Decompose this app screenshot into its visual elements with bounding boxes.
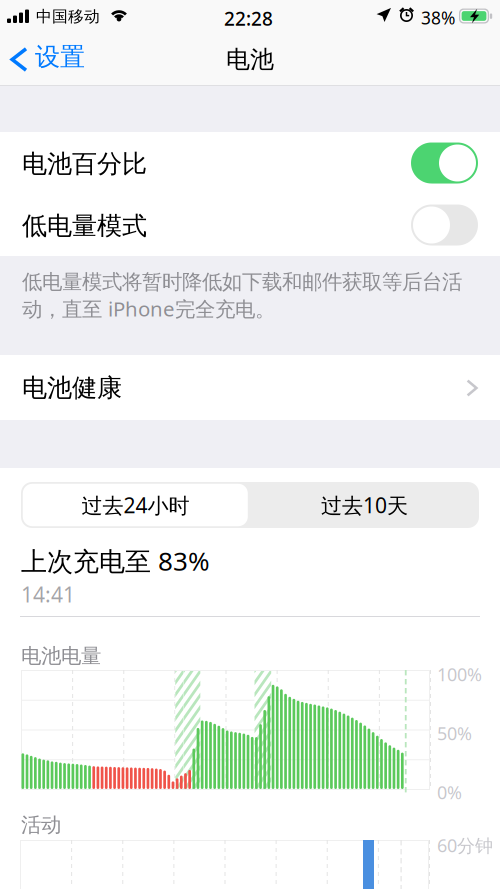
staticText: 电池电量: [21, 643, 101, 669]
staticText: 设置: [35, 41, 85, 73]
staticText: 低电量模式将暂时降低如下载和邮件获取等后台活 动，直至 iPhone完全充电。: [22, 269, 462, 322]
staticText: 0%: [437, 780, 462, 804]
staticText: 电池百分比: [22, 148, 147, 180]
staticText: 电池: [226, 44, 274, 75]
staticText: 100%: [437, 662, 482, 686]
staticText: 活动: [21, 812, 61, 838]
staticText: 低电量模式: [22, 210, 147, 242]
button[interactable]: 设置: [0, 33, 105, 86]
button[interactable]: 低电量模式: [0, 194, 500, 256]
staticText: 60分钟: [437, 833, 493, 857]
staticText: 过去24小时: [81, 491, 189, 519]
staticText: 14:41: [21, 580, 75, 609]
staticText: 中国移动: [36, 6, 100, 26]
staticText: 38%: [421, 6, 455, 30]
staticText: 电池健康: [22, 372, 122, 404]
button[interactable]: 电池健康: [0, 355, 500, 420]
button[interactable]: 过去24小时: [21, 482, 250, 528]
staticText: 上次充电至 83%: [21, 543, 210, 578]
staticText: 22:28: [224, 5, 273, 31]
staticText: 50%: [437, 721, 472, 745]
button[interactable]: 电池百分比: [0, 132, 500, 194]
staticText: 过去10天: [321, 491, 408, 519]
button[interactable]: 过去10天: [250, 482, 479, 528]
